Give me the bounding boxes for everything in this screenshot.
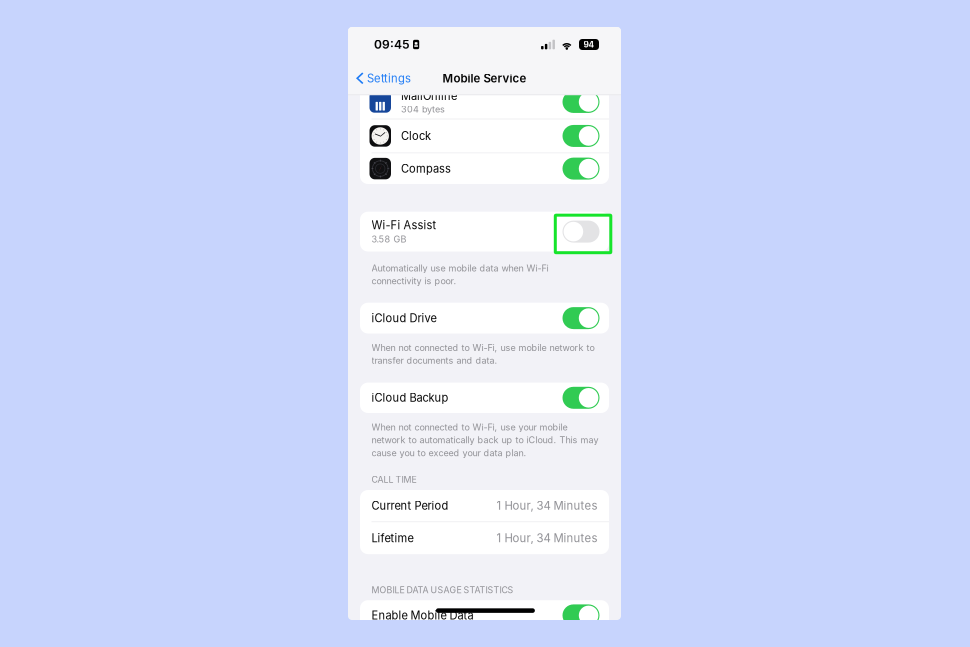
staticText: Settings [367,72,411,85]
button[interactable]: Compass [360,153,609,184]
staticText: 1 Hour, 34 Minutes [496,531,597,545]
button[interactable]: Clock [360,119,609,153]
button[interactable]: Enable Mobile Data [360,600,609,631]
staticText: iCloud Drive [371,311,436,325]
button[interactable]: Lifetime [360,522,609,554]
staticText: MailOnline [401,89,457,103]
staticText: Compass [401,162,451,175]
staticText: Automatically use mobile data when Wi-Fi… [371,263,548,286]
button[interactable]: Current Period [360,490,609,521]
button[interactable]: Settings [348,67,417,90]
button[interactable]: MailOnline [360,85,609,119]
button[interactable]: iCloud Backup [360,383,609,413]
button[interactable]: Wi-Fi Assist [360,212,609,251]
staticText: When not connected to Wi-Fi, use mobile … [371,342,594,366]
staticText: iCloud Backup [371,391,448,404]
staticText: When not connected to Wi-Fi, use your mo… [371,422,598,458]
staticText: Clock [401,129,431,143]
staticText: Wi-Fi Assist [371,218,436,232]
staticText: 3.58 GB [371,234,406,245]
staticText: 09:45 [374,37,410,52]
staticText: CALL TIME [371,474,416,485]
staticText: 304 bytes [401,104,445,115]
staticText: MOBILE DATA USAGE STATISTICS [371,585,513,595]
staticText: 1 Hour, 34 Minutes [496,499,597,513]
staticText: 94 [583,39,594,49]
staticText: Enable Mobile Data [371,609,473,622]
button[interactable]: iCloud Drive [360,303,609,333]
staticText: Current Period [371,499,448,512]
staticText: Lifetime [371,531,413,545]
staticText: Mobile Service [442,71,526,85]
